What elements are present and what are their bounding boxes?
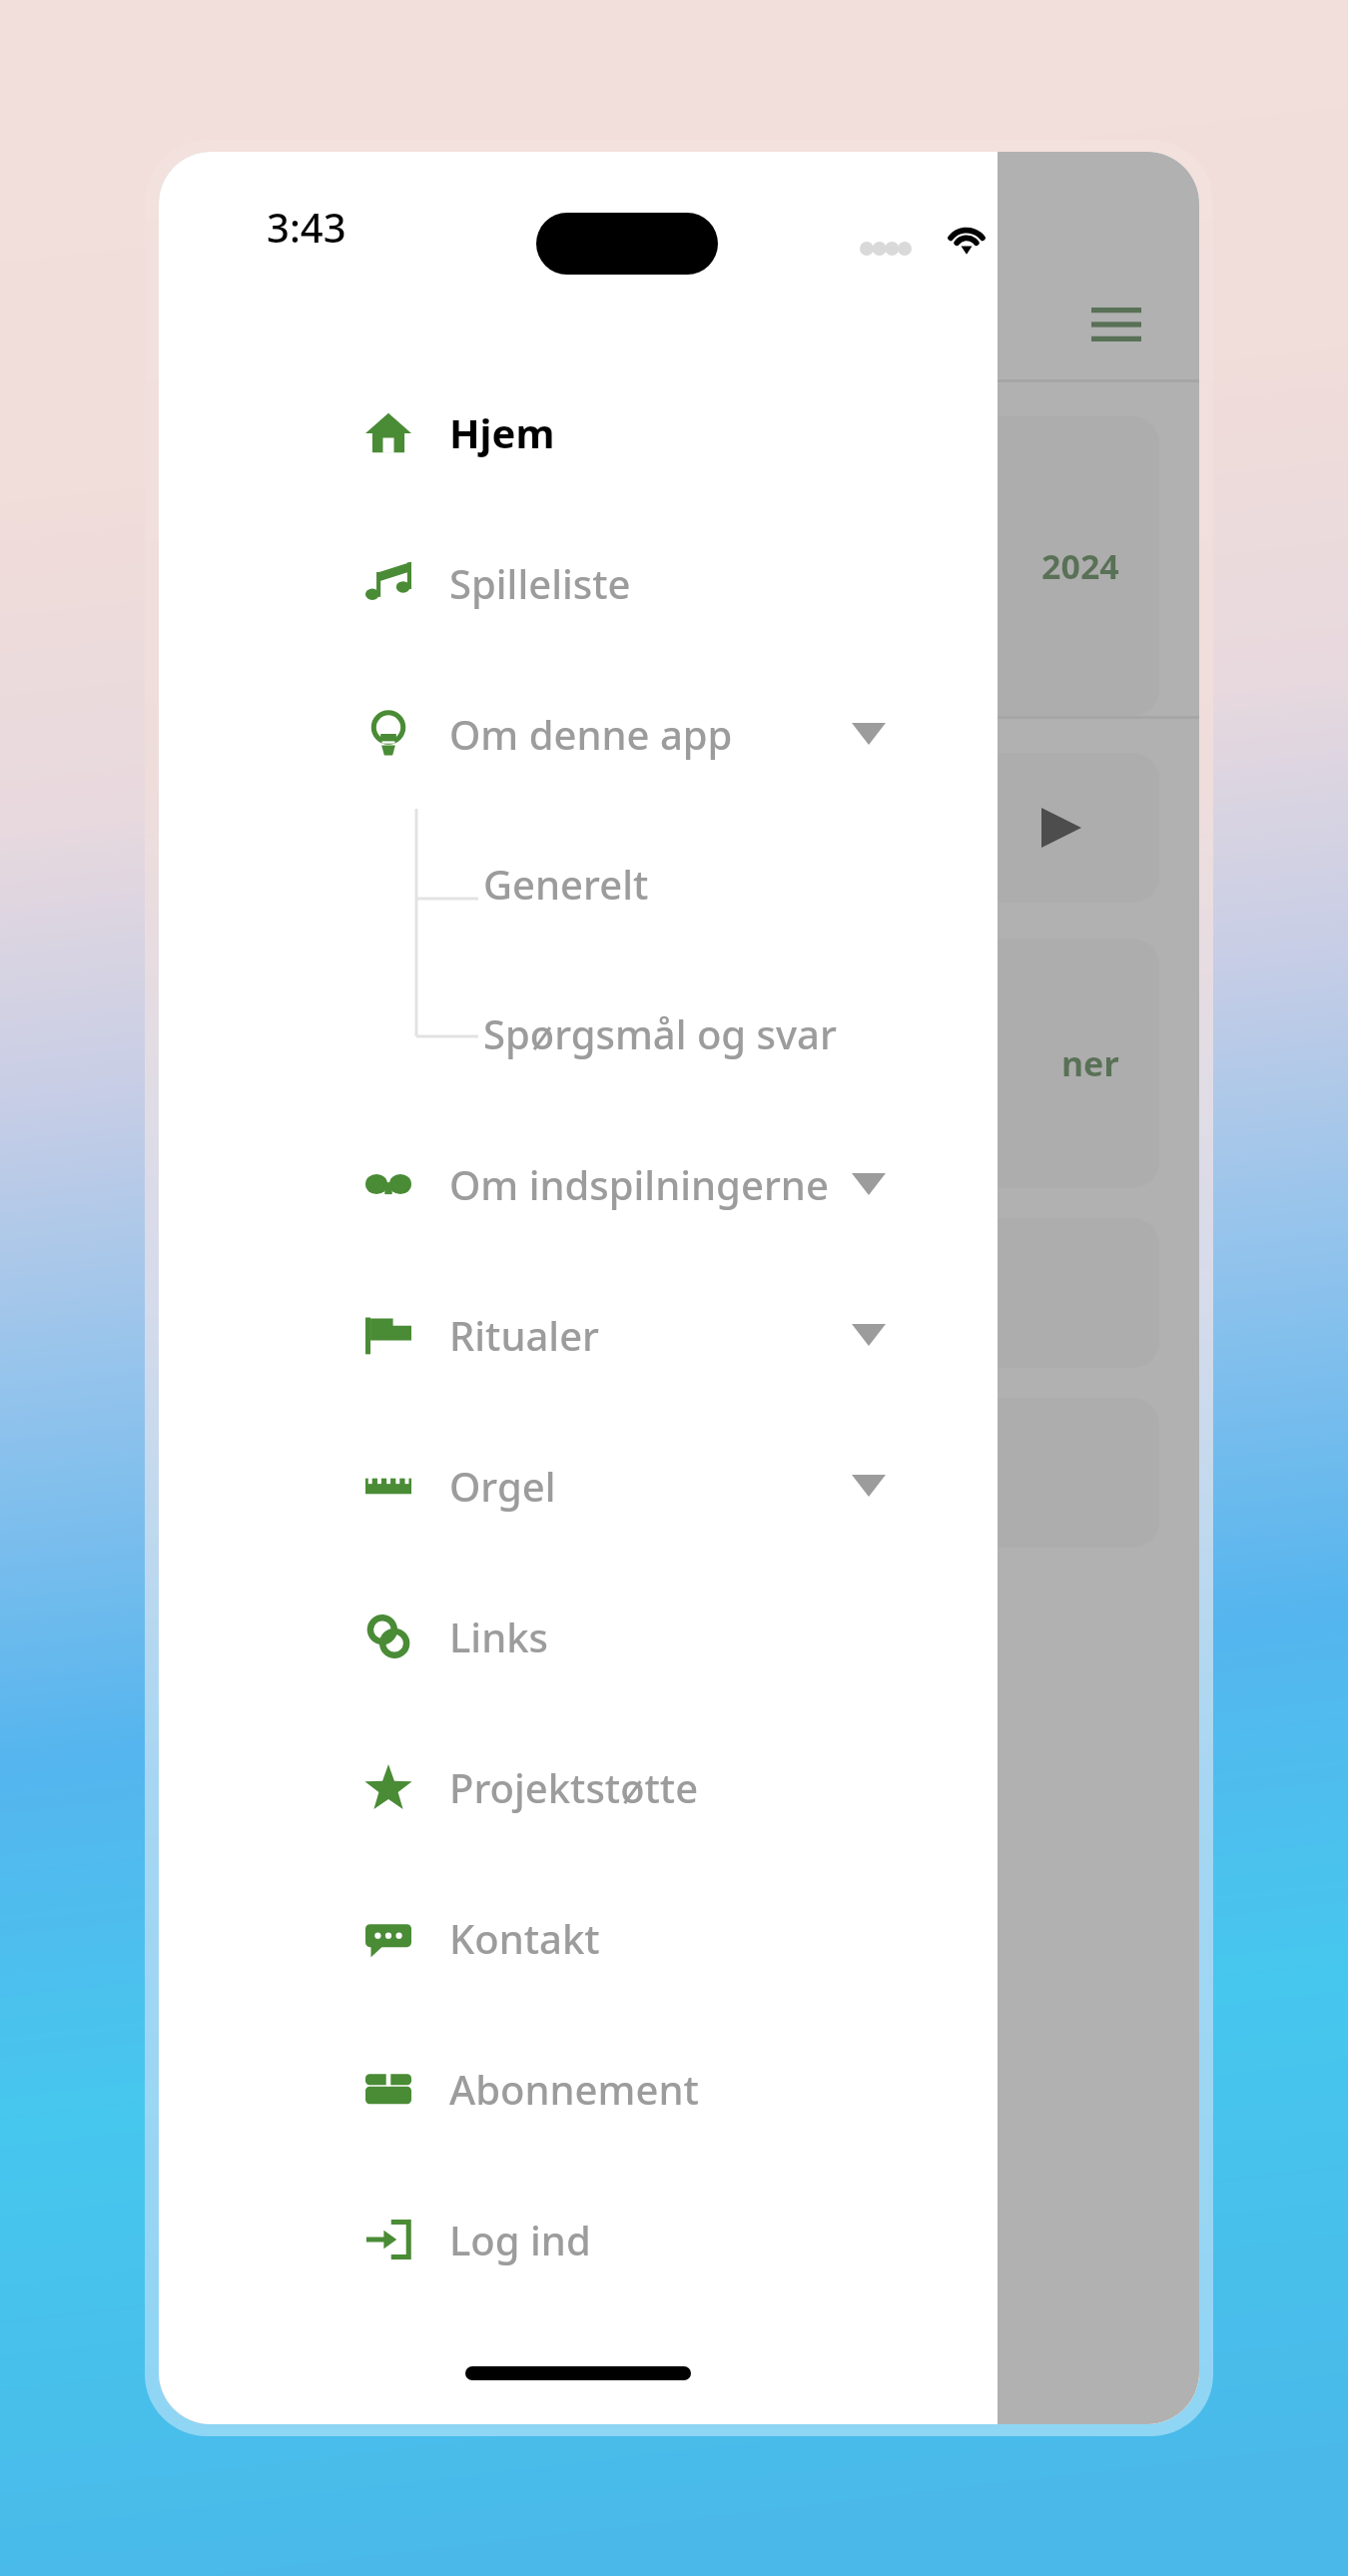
button[interactable] [199, 1398, 1159, 1548]
staticText: Spilleliste [449, 556, 631, 610]
staticText: ner [1061, 1040, 1119, 1086]
staticText: Om indspilningerne [449, 1157, 829, 1211]
staticText: Log ind [449, 2213, 591, 2266]
staticText: 3:43 [267, 200, 346, 254]
staticText: Orgel [449, 1459, 556, 1513]
staticText: Hjem [449, 405, 555, 459]
button[interactable]: Projektstøtte [159, 1711, 998, 1862]
button[interactable]: Om indspilningerne [159, 1108, 998, 1259]
staticText: Projektstøtte [449, 1760, 699, 1814]
staticText: Generelt [483, 857, 649, 911]
staticText: Abonnement [449, 2062, 699, 2116]
button[interactable]: Ritualer [159, 1259, 998, 1410]
staticText: Links [449, 1610, 549, 1663]
button[interactable] [199, 753, 1159, 903]
button[interactable]: Log ind [159, 2164, 998, 2314]
staticText: 2024 [1041, 543, 1119, 589]
staticText: Kontakt [449, 1911, 600, 1965]
button[interactable]: Kontakt [159, 1862, 998, 2013]
button[interactable]: Spilleliste [159, 507, 998, 658]
button[interactable]: 2024 [199, 416, 1159, 716]
button[interactable]: Om denne app [159, 658, 998, 809]
button[interactable]: Orgel [159, 1410, 998, 1561]
button[interactable]: Generelt [159, 809, 998, 959]
staticText: Ritualer [449, 1308, 600, 1362]
staticText: Spørgsmål og svar [483, 1006, 837, 1060]
button[interactable]: Abonnement [159, 2013, 998, 2164]
button[interactable]: Spørgsmål og svar [159, 959, 998, 1108]
button[interactable]: Open navigation menu [1081, 290, 1151, 359]
button[interactable] [199, 1218, 1159, 1368]
button[interactable]: ner [199, 939, 1159, 1188]
staticText: Om denne app [449, 707, 733, 761]
button[interactable]: Links [159, 1561, 998, 1711]
button[interactable]: Hjem [159, 356, 998, 507]
